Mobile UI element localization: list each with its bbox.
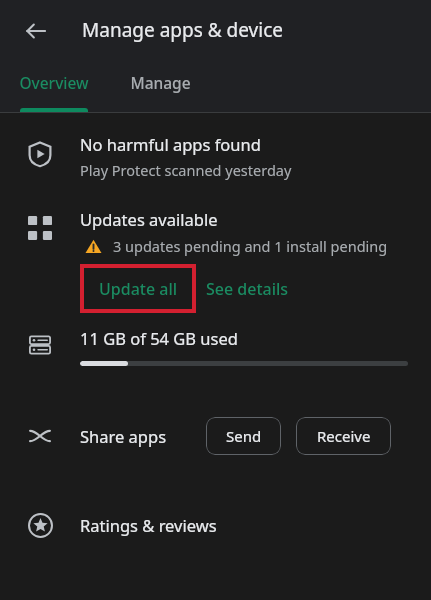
staticText: See details: [206, 278, 289, 300]
staticText: 11 GB of 54 GB used: [80, 327, 238, 349]
button[interactable]: No harmful apps found: [0, 133, 431, 180]
staticText: Ratings & reviews: [80, 514, 217, 536]
staticText: Overview: [19, 72, 89, 93]
button[interactable]: Send: [206, 417, 281, 455]
staticText: Play Protect scanned yesterday: [80, 160, 292, 180]
button[interactable]: Manage: [108, 62, 212, 112]
staticText: Updates available: [80, 208, 218, 230]
button[interactable]: Receive: [296, 417, 391, 455]
button[interactable]: 11 GB of 54 GB used: [0, 327, 431, 366]
button[interactable]: Back: [14, 9, 58, 53]
button[interactable]: See details: [196, 264, 299, 313]
staticText: Send: [226, 426, 262, 446]
staticText: 3 updates pending and 1 install pending: [113, 236, 388, 256]
staticText: Update all: [99, 278, 178, 300]
staticText: Receive: [317, 426, 371, 446]
staticText: Share apps: [80, 425, 167, 447]
staticText: No harmful apps found: [80, 133, 261, 155]
staticText: Manage: [130, 72, 191, 93]
button[interactable]: Overview: [0, 62, 108, 112]
button[interactable]: Update all: [80, 264, 196, 313]
button[interactable]: Ratings & reviews: [0, 500, 431, 550]
staticText: Manage apps & device: [82, 17, 283, 43]
